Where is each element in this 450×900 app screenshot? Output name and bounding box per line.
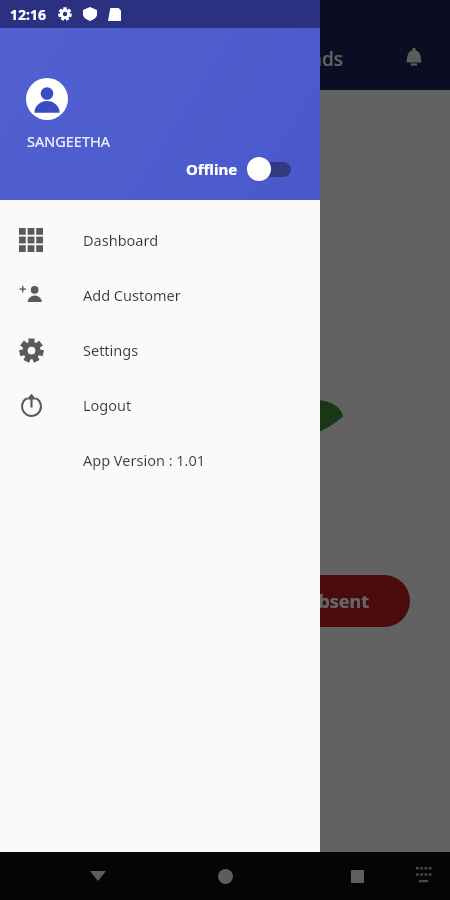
button[interactable] xyxy=(0,0,450,852)
button[interactable]: Recent apps xyxy=(337,856,377,896)
staticText: Add Customer xyxy=(83,285,181,305)
button[interactable]: Offline xyxy=(186,156,293,182)
staticText: App Version : 1.01 xyxy=(83,450,206,470)
staticText: SANGEETHA xyxy=(27,131,110,151)
staticText: Logout xyxy=(83,395,132,415)
button[interactable]: Switch keyboard xyxy=(408,859,442,893)
button[interactable]: Absent xyxy=(265,575,410,627)
button[interactable]: Dashboard xyxy=(0,212,320,267)
button[interactable]: Back xyxy=(78,856,118,896)
staticText: Leads xyxy=(290,46,343,72)
button[interactable]: Add Customer xyxy=(0,267,320,322)
staticText: Offline xyxy=(186,159,238,179)
staticText: Dashboard xyxy=(83,230,159,250)
button[interactable]: Notifications xyxy=(392,37,436,81)
button[interactable]: Home xyxy=(205,856,245,896)
staticText: Absent xyxy=(306,589,370,614)
button[interactable]: Logout xyxy=(0,377,320,432)
button[interactable]: Settings xyxy=(0,322,320,377)
staticText: 12:16 xyxy=(10,5,46,24)
staticText: Settings xyxy=(83,340,139,360)
